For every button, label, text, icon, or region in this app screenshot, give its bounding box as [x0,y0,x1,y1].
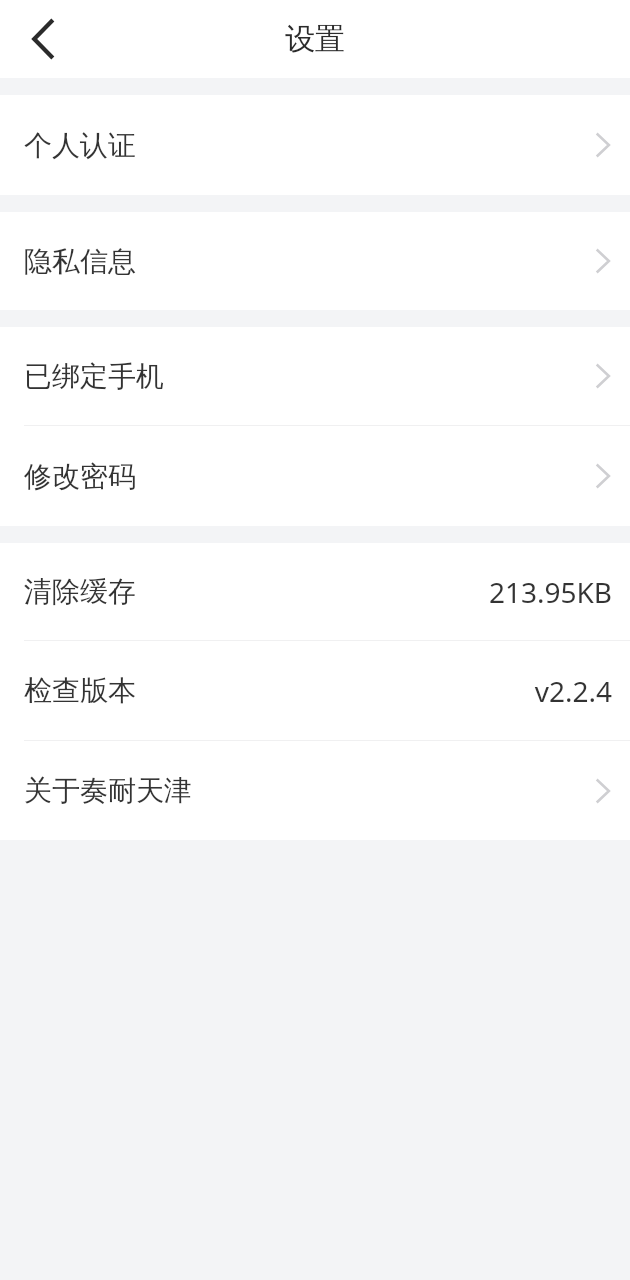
button[interactable]: 个人认证 [0,95,630,195]
staticText: 个人认证 [24,128,136,163]
staticText: 隐私信息 [24,244,136,279]
button[interactable]: 检查版本 [0,641,630,740]
staticText: 检查版本 [24,673,136,708]
staticText: 清除缓存 [24,574,136,609]
staticText: 设置 [285,20,345,58]
staticText: v2.2.4 [534,672,612,710]
button[interactable]: 修改密码 [0,426,630,526]
staticText: 已绑定手机 [24,359,164,394]
button[interactable]: 关于奏耐天津 [0,741,630,840]
staticText: 关于奏耐天津 [24,773,192,808]
button[interactable]: 隐私信息 [0,212,630,310]
button[interactable]: 已绑定手机 [0,327,630,425]
button[interactable]: 清除缓存 [0,543,630,640]
staticText: 213.95KB [488,573,612,611]
button[interactable]: Back [14,10,72,68]
staticText: 修改密码 [24,459,136,494]
